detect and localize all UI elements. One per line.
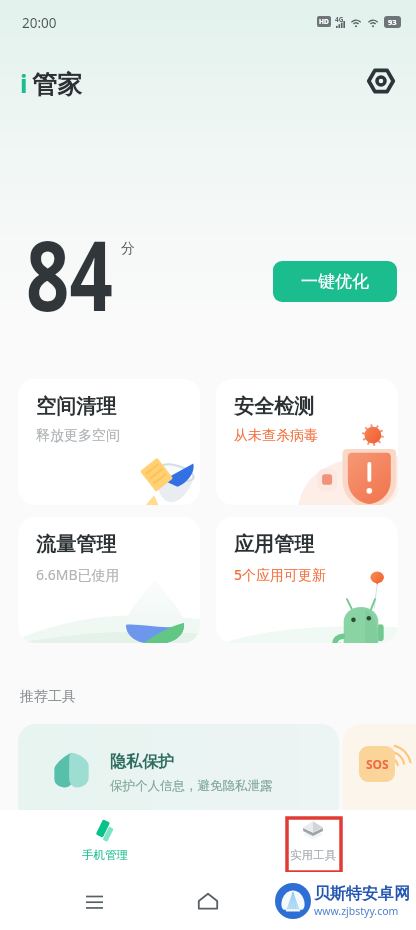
staticText: 93 [388,17,397,27]
staticText: www.zjbstyy.com [314,904,399,918]
staticText: i [20,66,28,100]
staticText: 6.6MB已使用 [36,565,120,584]
button[interactable]: 应用管理 [216,517,398,643]
button[interactable]: SOS [343,724,416,824]
staticText: 分 [121,240,135,258]
button[interactable]: 手机管理 [57,816,153,862]
staticText: 20:00 [22,14,57,32]
staticText: 从未查杀病毒 [234,427,318,445]
button[interactable]: 实用工具 [265,816,361,862]
staticText: 84 [26,208,113,330]
staticText: 应用管理 [234,532,314,557]
staticText: 一键优化 [301,271,369,292]
staticText: 隐私保护 [110,752,174,772]
staticText: 贝斯特安卓网 [314,884,410,904]
staticText: 推荐工具 [20,688,76,706]
button[interactable]: 隐私保护 [18,724,339,824]
button[interactable]: Settings [364,64,398,98]
button[interactable]: Recent apps [74,881,114,921]
staticText: 管家 [32,69,82,100]
button[interactable]: 流量管理 [18,517,200,643]
button[interactable]: 一键优化 [273,261,397,302]
staticText: 手机管理 [82,848,128,862]
staticText: 释放更多空间 [36,427,120,445]
staticText: 空间清理 [36,394,116,419]
staticText: HD [319,17,329,26]
staticText: 5个应用可更新 [234,565,327,584]
staticText: 保护个人信息，避免隐私泄露 [110,778,273,794]
staticText: 实用工具 [290,848,336,862]
button[interactable]: 空间清理 [18,379,200,505]
staticText: SOS [366,756,389,772]
staticText: 流量管理 [36,532,116,557]
button[interactable]: 安全检测 [216,379,398,505]
button[interactable]: Home [188,881,228,921]
staticText: 安全检测 [234,394,314,419]
staticText: 4G [335,15,344,24]
